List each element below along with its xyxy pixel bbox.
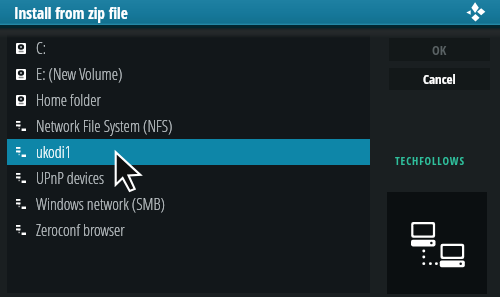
button[interactable]: E: (New Volume) (7, 61, 370, 87)
button[interactable]: C: (7, 35, 370, 61)
button[interactable]: Windows network (SMB) (7, 191, 370, 217)
other: Kodi (466, 2, 486, 22)
staticText: Cancel (423, 70, 456, 88)
staticText: Network File System (NFS) (36, 115, 173, 137)
button[interactable]: OK (389, 38, 490, 61)
staticText: ukodi1 (36, 141, 72, 163)
button[interactable]: Network File System (NFS) (7, 113, 370, 139)
staticText: OK (432, 41, 447, 59)
staticText: Zeroconf browser (36, 219, 125, 241)
button[interactable]: Home folder (7, 87, 370, 113)
staticText: C: (36, 37, 47, 59)
staticText: TECHFOLLOWS (395, 153, 465, 168)
button[interactable]: Cancel (389, 68, 490, 90)
staticText: Windows network (SMB) (36, 193, 165, 215)
staticText: UPnP devices (36, 167, 105, 189)
button[interactable]: UPnP devices (7, 165, 370, 191)
staticText: Home folder (36, 89, 101, 111)
staticText: Install from zip file (14, 3, 128, 24)
staticText: E: (New Volume) (36, 63, 123, 85)
button[interactable]: ukodi1 (7, 139, 370, 165)
button[interactable]: Zeroconf browser (7, 217, 370, 243)
